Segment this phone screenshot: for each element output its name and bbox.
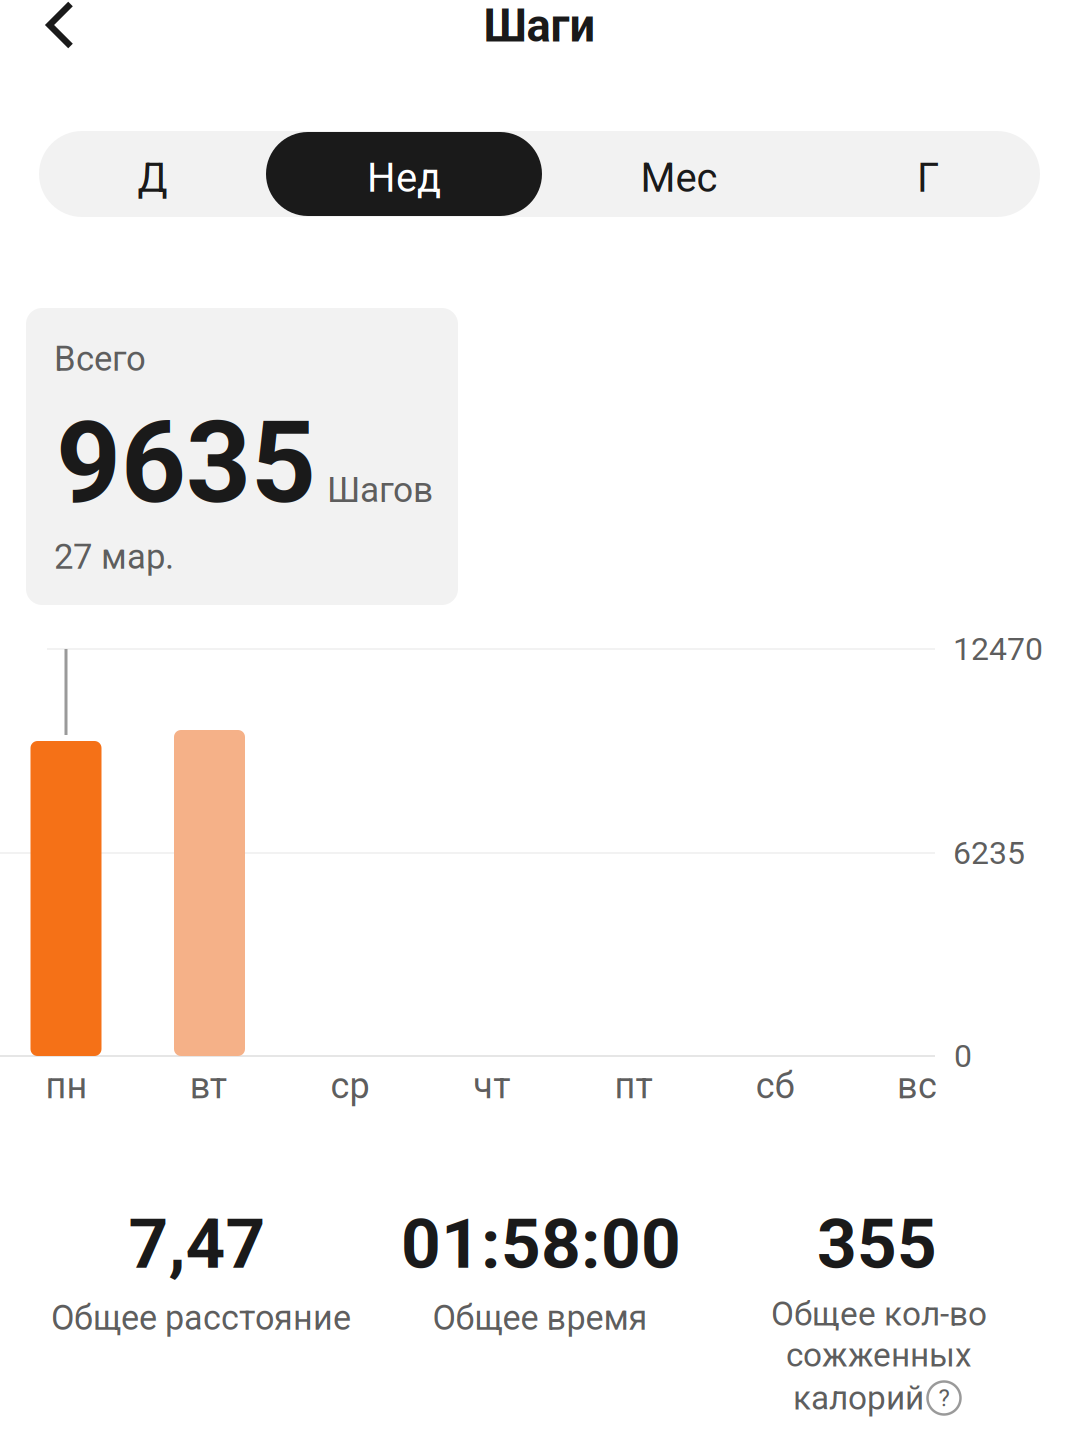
staticText: вс [897,1065,937,1107]
staticText: ? [938,1384,949,1412]
staticText: вт [190,1065,227,1107]
staticText: пн [45,1065,87,1107]
staticText: сб [756,1065,795,1107]
button[interactable]: Нед [266,132,542,216]
staticText: 7,47 [128,1203,265,1285]
staticText: 12470 [953,630,1043,668]
staticText: 9635 [56,397,316,529]
staticText: Общее кол-во [771,1294,987,1334]
staticText: Общее время [432,1298,647,1338]
staticText: сожженных [786,1335,972,1375]
staticText: 0 [954,1037,972,1075]
staticText: 01:58:00 [401,1203,681,1285]
staticText: калорий [793,1378,924,1418]
staticText: Шаги [483,0,595,52]
button[interactable]: Д [39,132,266,216]
staticText: Г [917,155,939,201]
staticText: ср [330,1065,369,1107]
staticText: Нед [367,155,441,201]
button[interactable]: Г [816,132,1040,216]
staticText: Мес [640,155,717,201]
button[interactable]: Мес [542,132,816,216]
button[interactable]: Back [5,0,115,71]
staticText: 27 мар. [54,537,174,577]
staticText: пт [614,1065,652,1107]
staticText: Д [137,155,167,201]
staticText: чт [473,1065,510,1107]
button[interactable]: About burned calories [927,1381,961,1415]
staticText: 6235 [953,834,1025,872]
staticText: Всего [54,339,146,379]
staticText: 355 [817,1203,937,1285]
staticText: Общее расстояние [51,1298,351,1338]
staticText: Шагов [327,469,433,511]
